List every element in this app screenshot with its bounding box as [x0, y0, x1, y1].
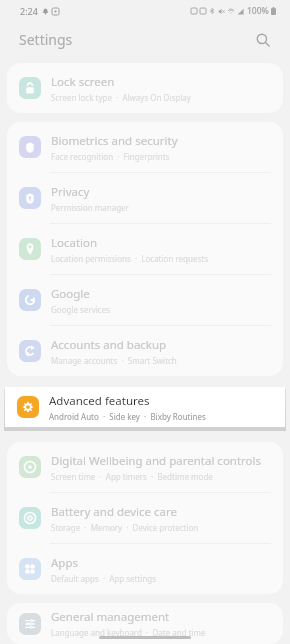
button[interactable]: Biometrics and security: [7, 122, 283, 172]
staticText: Biometrics and security: [51, 133, 178, 149]
staticText: Location permissions · Location requests: [51, 253, 209, 264]
staticText: Settings: [19, 30, 73, 49]
staticText: Google services: [51, 304, 111, 315]
button[interactable]: Google: [7, 275, 283, 325]
staticText: Manage accounts · Smart Switch: [51, 355, 177, 366]
button[interactable]: Privacy: [7, 173, 283, 223]
staticText: Permission manager: [51, 202, 129, 213]
staticText: Advanced features: [49, 393, 150, 409]
button[interactable]: Advanced features: [5, 387, 285, 427]
staticText: General management: [51, 609, 170, 625]
staticText: Digital Wellbeing and parental controls: [51, 453, 262, 469]
button[interactable]: Digital Wellbeing and parental controls: [7, 442, 283, 492]
staticText: Language and keyboard · Date and time: [51, 627, 206, 638]
button[interactable]: Accounts and backup: [7, 326, 283, 376]
button[interactable]: Lock screen: [7, 63, 283, 113]
button[interactable]: Battery and device care: [7, 493, 283, 543]
button[interactable]: General management: [7, 603, 283, 644]
button[interactable]: Search: [250, 27, 276, 53]
button[interactable]: Apps: [7, 544, 283, 594]
staticText: Storage · Memory · Device protection: [51, 522, 199, 533]
staticText: Screen time · App timers · Bedtime mode: [51, 471, 213, 482]
staticText: Face recognition · Fingerprints: [51, 151, 170, 162]
staticText: Location: [51, 235, 98, 251]
staticText: Screen lock type · Always On Display: [51, 92, 191, 103]
button[interactable]: Location: [7, 224, 283, 274]
staticText: 100%: [247, 5, 269, 17]
staticText: Default apps · App settings: [51, 573, 157, 584]
staticText: Battery and device care: [51, 504, 178, 520]
staticText: Privacy: [51, 184, 90, 200]
staticText: Accounts and backup: [51, 337, 167, 353]
staticText: Android Auto · Side key · Bixby Routines: [49, 411, 206, 422]
staticText: 2:24: [20, 5, 38, 17]
staticText: Lock screen: [51, 74, 115, 90]
staticText: Apps: [51, 555, 79, 571]
staticText: Google: [51, 286, 90, 302]
